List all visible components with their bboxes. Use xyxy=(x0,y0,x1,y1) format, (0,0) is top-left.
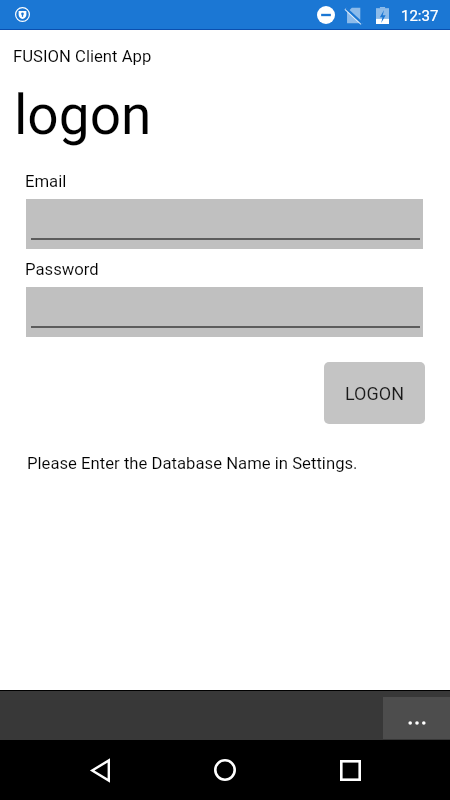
staticText: 12:37 xyxy=(401,7,439,25)
staticText: LOGON xyxy=(345,383,404,404)
button[interactable]: Recent apps xyxy=(310,740,390,800)
staticText: logon xyxy=(14,83,152,147)
button[interactable]: LOGON xyxy=(324,362,425,424)
staticText: FUSION Client App xyxy=(13,47,152,67)
button[interactable] xyxy=(26,199,423,249)
button[interactable]: Home xyxy=(185,740,265,800)
staticText: Email xyxy=(25,172,67,192)
staticText: Password xyxy=(25,260,99,280)
button[interactable] xyxy=(26,287,423,337)
other: VPN active xyxy=(15,7,30,22)
button[interactable]: More options xyxy=(383,697,450,739)
staticText: Please Enter the Database Name in Settin… xyxy=(27,454,358,474)
button[interactable]: Back xyxy=(60,740,140,800)
